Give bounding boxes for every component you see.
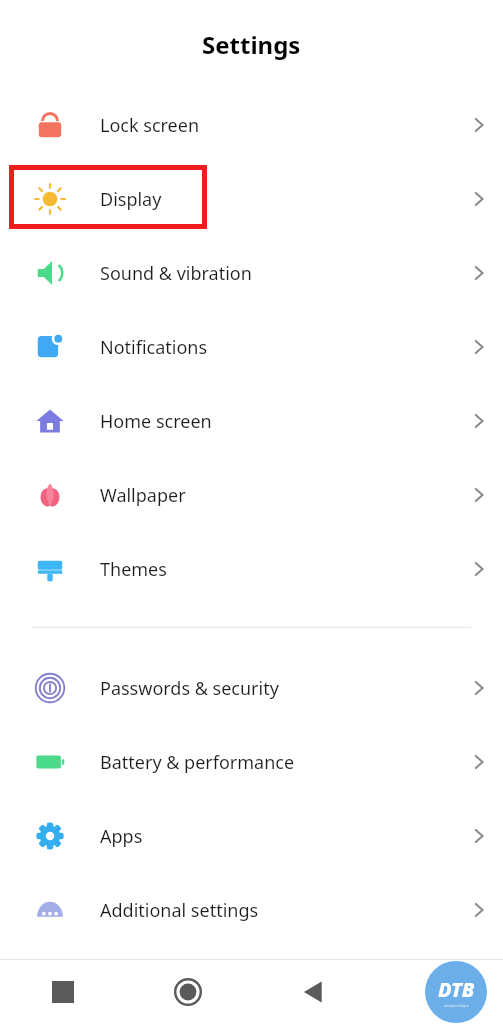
button[interactable]: Back (251, 960, 377, 1024)
staticText: Notifications (100, 335, 455, 360)
staticText: Display (100, 187, 455, 212)
staticText: DTB (438, 976, 475, 1003)
button[interactable]: Passwords & security (0, 651, 503, 725)
staticText: dailytechbyte (444, 1003, 470, 1008)
button[interactable]: Display (0, 162, 503, 236)
staticText: Wallpaper (100, 483, 455, 508)
button[interactable]: Themes (0, 532, 503, 606)
staticText: Settings (202, 28, 301, 61)
button[interactable]: Additional settings (0, 873, 503, 947)
staticText: Themes (100, 557, 455, 582)
button[interactable]: Apps (0, 799, 503, 873)
button[interactable]: Battery & performance (0, 725, 503, 799)
staticText: Lock screen (100, 113, 455, 138)
staticText: Home screen (100, 409, 455, 434)
button[interactable]: DTB watermark (425, 961, 487, 1023)
staticText: Additional settings (100, 898, 455, 923)
button[interactable]: Notifications (0, 310, 503, 384)
button[interactable]: Wallpaper (0, 458, 503, 532)
staticText: Battery & performance (100, 750, 455, 775)
staticText: Passwords & security (100, 676, 455, 701)
button[interactable]: Recents (0, 960, 125, 1024)
button[interactable]: Home (125, 960, 251, 1024)
button[interactable]: Sound & vibration (0, 236, 503, 310)
button[interactable]: Lock screen (0, 88, 503, 162)
staticText: Sound & vibration (100, 261, 455, 286)
staticText: Apps (100, 824, 455, 849)
button[interactable]: Home screen (0, 384, 503, 458)
